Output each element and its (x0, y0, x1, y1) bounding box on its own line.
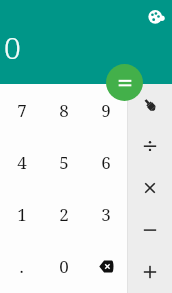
staticText: 0 (4, 27, 21, 68)
staticText: . (19, 255, 24, 278)
button[interactable]: Change theme (144, 5, 166, 27)
staticText: 7 (17, 99, 27, 122)
staticText: 2 (59, 203, 69, 226)
button[interactable]: 0 (43, 240, 85, 293)
button[interactable]: 9 (85, 84, 127, 136)
button[interactable]: Backspace (85, 240, 127, 293)
staticText: 8 (59, 99, 69, 122)
button[interactable]: Divide (128, 125, 172, 167)
button[interactable]: 7 (0, 84, 43, 136)
button[interactable]: . (0, 240, 43, 293)
button[interactable]: Subtract (128, 209, 172, 251)
button[interactable]: 1 (0, 188, 43, 240)
button[interactable]: 4 (0, 136, 43, 188)
staticText: 4 (17, 151, 27, 174)
staticText: 5 (59, 151, 69, 174)
button[interactable]: Add (128, 251, 172, 293)
staticText: 6 (101, 151, 111, 174)
button[interactable]: 6 (85, 136, 127, 188)
staticText: 1 (17, 203, 27, 226)
button[interactable]: 2 (43, 188, 85, 240)
staticText: 3 (101, 203, 111, 226)
button[interactable]: 5 (43, 136, 85, 188)
staticText: 0 (59, 255, 69, 278)
button[interactable]: 3 (85, 188, 127, 240)
button[interactable]: 8 (43, 84, 85, 136)
staticText: 9 (101, 99, 111, 122)
button[interactable]: Clear (128, 84, 172, 125)
button[interactable]: Equals (106, 64, 143, 101)
button[interactable]: Multiply (128, 167, 172, 209)
